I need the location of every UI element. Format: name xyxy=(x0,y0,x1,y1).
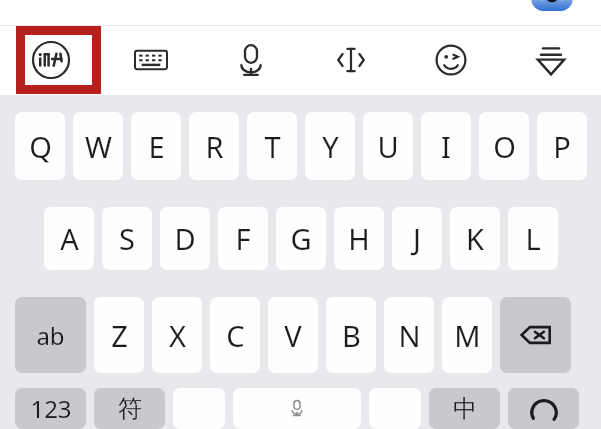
button[interactable]: F xyxy=(218,207,268,270)
staticText: S xyxy=(119,219,135,258)
button[interactable]: K xyxy=(450,207,500,270)
button[interactable]: C xyxy=(210,297,260,373)
staticText: Z xyxy=(111,316,128,355)
staticText: B xyxy=(342,316,361,355)
button[interactable]: S xyxy=(102,207,152,270)
staticText: D xyxy=(174,219,196,258)
button[interactable]: M xyxy=(442,297,492,373)
staticText: Q xyxy=(29,127,52,166)
staticText: E xyxy=(148,127,165,166)
button[interactable]: N xyxy=(384,297,434,373)
button[interactable]: 123 xyxy=(15,388,86,429)
staticText: V xyxy=(284,316,302,355)
button[interactable]: I xyxy=(421,112,471,180)
staticText: ab xyxy=(36,319,65,352)
button[interactable]: 符 xyxy=(94,388,165,429)
button[interactable]: G xyxy=(276,207,326,270)
button[interactable]: R xyxy=(189,112,239,180)
button[interactable]: Enter xyxy=(508,388,579,429)
button[interactable]: T xyxy=(247,112,297,180)
staticText: I xyxy=(441,127,451,166)
button[interactable]: P xyxy=(537,112,587,180)
button[interactable]: Space xyxy=(233,388,361,429)
button[interactable]: Hide keyboard xyxy=(501,25,601,95)
button[interactable]: A xyxy=(44,207,94,270)
button[interactable]: D xyxy=(160,207,210,270)
staticText: 符 xyxy=(118,394,142,424)
staticText: U xyxy=(377,127,399,166)
button[interactable]: E xyxy=(131,112,181,180)
staticText: L xyxy=(525,219,541,258)
staticText: P xyxy=(553,127,571,166)
staticText: Y xyxy=(322,127,339,166)
button[interactable]: V xyxy=(268,297,318,373)
staticText: N xyxy=(398,316,421,355)
button[interactable]: Y xyxy=(305,112,355,180)
staticText: 中 xyxy=(453,394,477,424)
button[interactable]: U xyxy=(363,112,413,180)
staticText: W xyxy=(85,127,112,166)
button[interactable]: L xyxy=(508,207,558,270)
staticText: O xyxy=(493,127,516,166)
staticText: X xyxy=(169,316,186,355)
button[interactable]: Backspace xyxy=(500,297,571,373)
button[interactable]: O xyxy=(479,112,529,180)
staticText: T xyxy=(264,127,281,166)
button[interactable]: 中 xyxy=(429,388,500,429)
button[interactable]: Q xyxy=(15,112,65,180)
staticText: G xyxy=(290,219,312,258)
staticText: M xyxy=(454,316,481,355)
button[interactable]: Voice input xyxy=(201,25,301,95)
staticText: A xyxy=(60,219,79,258)
staticText: 123 xyxy=(30,392,72,425)
staticText: K xyxy=(466,219,484,258)
button[interactable]: Z xyxy=(94,297,144,373)
staticText: J xyxy=(413,219,421,258)
button[interactable]: ab xyxy=(15,297,86,373)
staticText: F xyxy=(235,219,251,258)
button[interactable]: H xyxy=(334,207,384,270)
button[interactable]: Profile avatar xyxy=(531,0,573,11)
button[interactable]: Move cursor xyxy=(301,25,401,95)
staticText: C xyxy=(226,316,245,355)
staticText: R xyxy=(205,127,224,166)
button[interactable]: Keyboard layout xyxy=(101,25,201,95)
button[interactable]: W xyxy=(73,112,123,180)
staticText: H xyxy=(348,219,370,258)
button[interactable]: B xyxy=(326,297,376,373)
button[interactable]: J xyxy=(392,207,442,270)
button[interactable]: X xyxy=(152,297,202,373)
button[interactable]: Input method switch xyxy=(0,25,101,95)
button[interactable]: Emoji xyxy=(401,25,501,95)
